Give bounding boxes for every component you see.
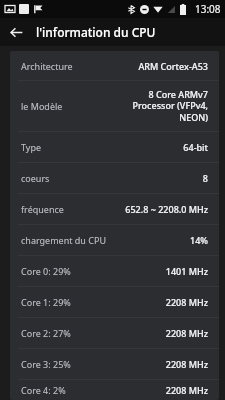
button[interactable]: coeurs (10, 163, 219, 193)
staticText: 1401 MHz (165, 265, 208, 277)
staticText: 64-bit (183, 141, 208, 153)
staticText: 13:08 (195, 2, 221, 16)
staticText: Core 2: 27% (21, 327, 71, 339)
staticText: 652.8 ~ 2208.0 MHz (125, 203, 208, 215)
staticText: 14% (190, 234, 208, 246)
staticText: fréquence (21, 203, 64, 215)
button[interactable]: Type (10, 132, 219, 162)
staticText: Core 4: 2% (21, 384, 66, 396)
button[interactable]: le Modèle (10, 81, 219, 131)
button[interactable]: chargement du CPU (10, 225, 219, 255)
button[interactable]: Core 4: 2% (10, 380, 219, 400)
staticText: 8 Core ARMv7 Processor (VFPv4, NEON) (132, 88, 208, 124)
staticText: Core 3: 25% (21, 358, 71, 370)
staticText: 2208 MHz (165, 384, 208, 396)
button[interactable]: fréquence (10, 194, 219, 224)
staticText: Core 0: 29% (21, 265, 71, 277)
button[interactable]: Core 3: 25% (10, 349, 219, 379)
staticText: Architecture (21, 60, 73, 72)
button[interactable]: Core 1: 29% (10, 287, 219, 317)
staticText: l'information du CPU (36, 24, 156, 40)
staticText: 2208 MHz (165, 358, 208, 370)
button[interactable]: Back (5, 21, 27, 43)
button[interactable]: Core 2: 27% (10, 318, 219, 348)
button[interactable]: Core 0: 29% (10, 256, 219, 286)
staticText: 2208 MHz (165, 296, 208, 308)
button[interactable]: Architecture (10, 51, 219, 80)
staticText: Type (21, 141, 42, 153)
staticText: ARM Cortex-A53 (138, 60, 208, 72)
staticText: 8 (202, 172, 208, 184)
staticText: le Modèle (21, 100, 63, 112)
staticText: coeurs (21, 172, 50, 184)
staticText: chargement du CPU (21, 234, 106, 246)
staticText: 2208 MHz (165, 327, 208, 339)
staticText: Core 1: 29% (21, 296, 71, 308)
